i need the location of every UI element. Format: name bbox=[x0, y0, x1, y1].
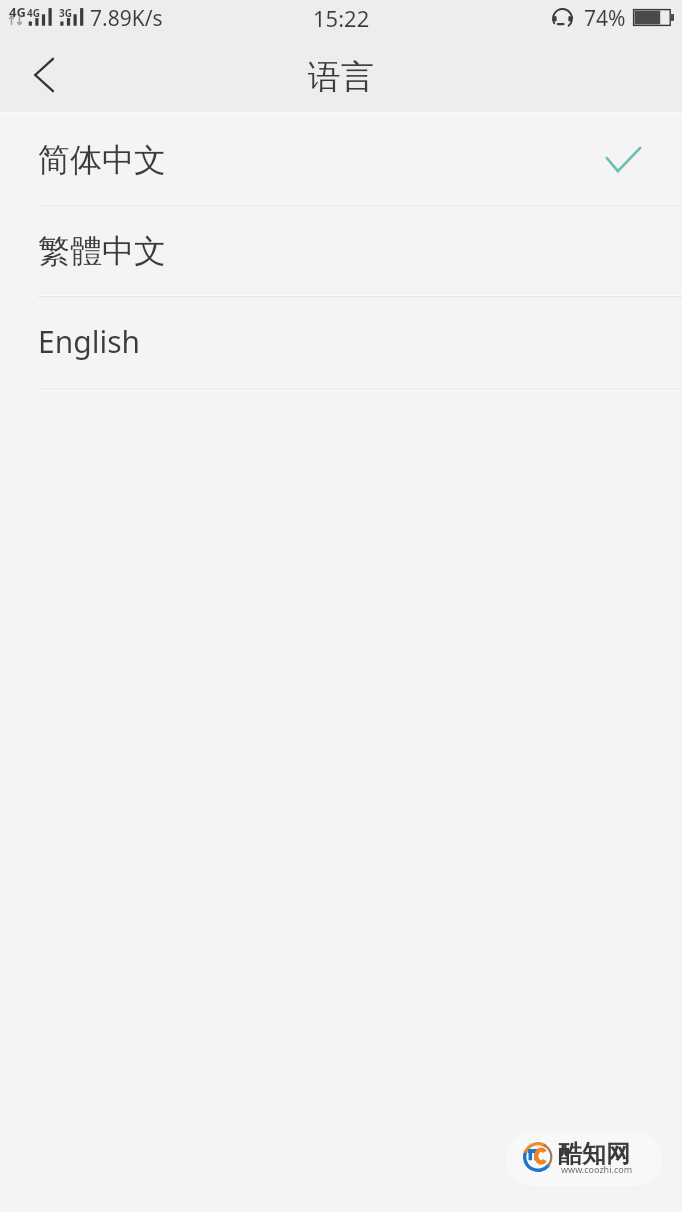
staticText: 酷知网 bbox=[558, 1139, 630, 1169]
staticText: www.coozhi.com bbox=[561, 1163, 633, 1175]
button[interactable]: Back bbox=[0, 38, 86, 112]
staticText: 74% bbox=[584, 4, 626, 33]
staticText: English bbox=[38, 321, 141, 362]
button[interactable]: English bbox=[0, 297, 682, 387]
staticText: 3G bbox=[59, 6, 72, 20]
staticText: 繁體中文 bbox=[38, 231, 166, 271]
button[interactable]: 简体中文 bbox=[0, 115, 682, 204]
button[interactable]: 繁體中文 bbox=[0, 206, 682, 295]
staticText: 语言 bbox=[308, 56, 374, 98]
staticText: 15:22 bbox=[313, 3, 370, 33]
staticText: 4G bbox=[9, 3, 26, 21]
staticText: 4G bbox=[27, 6, 40, 20]
staticText: 简体中文 bbox=[38, 140, 166, 180]
staticText: 7.89K/s bbox=[90, 4, 163, 33]
